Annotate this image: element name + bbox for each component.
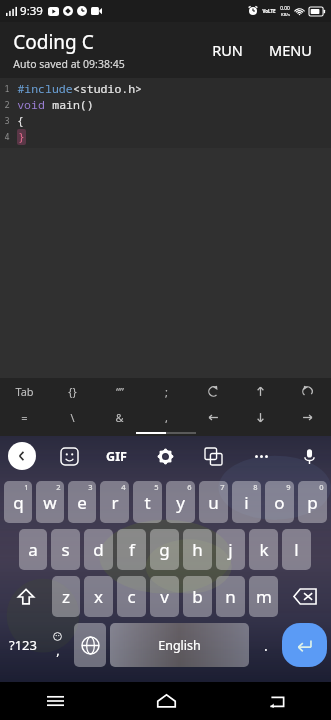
staticText: , (165, 410, 168, 425)
staticText: h (192, 538, 203, 561)
staticText: . (264, 636, 268, 655)
button[interactable]: Shift (2, 573, 50, 620)
button[interactable]: . (251, 623, 280, 667)
button[interactable]: Redo (284, 378, 331, 404)
button[interactable]: Emoji and comma (43, 623, 72, 667)
button[interactable]: c (117, 576, 146, 617)
staticText: ?123 (9, 636, 37, 654)
staticText: i (244, 491, 249, 514)
staticText: n (225, 585, 236, 608)
button[interactable]: Settings (151, 442, 179, 470)
button[interactable]: o (265, 481, 294, 523)
button[interactable]: Stickers (55, 442, 83, 470)
button[interactable]: GIF (102, 444, 131, 469)
button[interactable]: Undo (190, 378, 237, 404)
button[interactable]: Back (221, 682, 331, 720)
staticText: v (160, 585, 169, 608)
button[interactable]: Enter (282, 623, 327, 667)
button[interactable]: Voice input (295, 442, 323, 470)
button[interactable]: i (232, 481, 261, 523)
staticText: 2 (4, 99, 10, 111)
staticText: x (94, 585, 103, 608)
button[interactable]: More options (247, 442, 275, 470)
button[interactable]: English (110, 623, 249, 667)
staticText: l (294, 538, 299, 561)
staticText: void (17, 97, 45, 113)
staticText: 7 (220, 482, 225, 492)
staticText: 3 (4, 115, 10, 127)
button[interactable]: MENU (263, 32, 318, 68)
staticText: main() (45, 97, 94, 113)
staticText: 9 (286, 482, 291, 492)
staticText: 9:39 (20, 3, 43, 19)
staticText: MENU (269, 40, 312, 60)
button[interactable]: m (249, 576, 278, 617)
button[interactable]: h (183, 529, 212, 570)
staticText: = (21, 410, 28, 425)
staticText: } (18, 129, 25, 145)
button[interactable]: Tab (0, 378, 48, 404)
button[interactable]: {} (48, 378, 96, 404)
staticText: & (115, 410, 124, 425)
button[interactable]: Recent apps (0, 682, 111, 720)
staticText: e (77, 491, 87, 514)
button[interactable]: u (199, 481, 228, 523)
button[interactable]: Backspace (280, 573, 329, 620)
staticText: s (61, 538, 70, 561)
button[interactable]: Move up (237, 378, 284, 404)
button[interactable]: v (150, 576, 179, 617)
staticText: “” (116, 384, 124, 399)
button[interactable]: q (4, 481, 32, 523)
button[interactable]: r (100, 481, 129, 523)
button[interactable]: n (216, 576, 245, 617)
button[interactable]: & (96, 404, 143, 430)
staticText: 0.00 (280, 5, 290, 12)
button[interactable]: j (216, 529, 245, 570)
staticText: m (256, 585, 272, 608)
button[interactable]: \ (48, 404, 96, 430)
staticText: {} (68, 384, 77, 399)
staticText: 1 (4, 83, 10, 95)
staticText: f (129, 538, 135, 561)
button[interactable]: d (84, 529, 113, 570)
button[interactable]: Change language (74, 623, 106, 667)
button[interactable]: e (68, 481, 96, 523)
button[interactable]: Home (111, 682, 221, 720)
button[interactable]: f (117, 529, 146, 570)
button[interactable]: w (36, 481, 64, 523)
staticText: t (144, 491, 151, 514)
staticText: 6 (187, 482, 192, 492)
button[interactable]: y (166, 481, 195, 523)
staticText: a (28, 538, 38, 561)
staticText: c (127, 585, 136, 608)
staticText: 8 (253, 482, 258, 492)
staticText: r (111, 491, 119, 514)
button[interactable]: = (0, 404, 48, 430)
staticText: 0 (319, 482, 324, 492)
button[interactable]: g (150, 529, 179, 570)
button[interactable]: ; (143, 378, 190, 404)
button[interactable]: Move down (237, 404, 284, 430)
staticText: g (159, 538, 170, 561)
button[interactable]: l (282, 529, 311, 570)
button[interactable]: ?123 (2, 623, 43, 667)
button[interactable]: Move right (284, 404, 331, 430)
staticText: 4 (4, 131, 10, 143)
button[interactable]: b (183, 576, 212, 617)
staticText: Coding C (13, 29, 94, 55)
button[interactable]: “” (96, 378, 143, 404)
button[interactable]: Move left (190, 404, 237, 430)
button[interactable]: z (52, 576, 80, 617)
button[interactable]: RUN (206, 32, 249, 68)
button[interactable]: , (143, 404, 190, 430)
button[interactable]: k (249, 529, 278, 570)
button[interactable]: a (19, 529, 47, 570)
button[interactable]: p (298, 481, 327, 523)
staticText: 4 (121, 482, 126, 492)
button[interactable]: Translate (199, 442, 227, 470)
button[interactable]: Back (8, 442, 36, 470)
button[interactable]: t (133, 481, 162, 523)
button[interactable]: s (51, 529, 80, 570)
staticText: ; (165, 384, 168, 399)
button[interactable]: x (84, 576, 113, 617)
